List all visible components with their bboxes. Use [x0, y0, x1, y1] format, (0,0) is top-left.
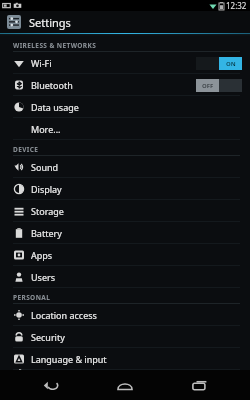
- staticText: Location access: [31, 309, 97, 321]
- staticText: Security: [31, 331, 65, 343]
- button[interactable]: Home: [102, 370, 148, 400]
- button[interactable]: Data usage: [0, 96, 250, 118]
- staticText: Settings: [29, 15, 71, 30]
- button[interactable]: Language & input: [0, 348, 250, 370]
- staticText: OFF: [202, 82, 214, 90]
- button[interactable]: Sound: [0, 156, 250, 178]
- button[interactable]: Back: [28, 370, 74, 400]
- staticText: Apps: [31, 249, 53, 261]
- button[interactable]: Location access: [0, 304, 250, 326]
- staticText: Data usage: [31, 101, 79, 113]
- staticText: Wi-Fi: [31, 57, 52, 69]
- button[interactable]: Users: [0, 266, 250, 288]
- staticText: DEVICE: [13, 145, 39, 154]
- staticText: Language & input: [31, 353, 107, 365]
- button[interactable]: More...: [0, 118, 250, 140]
- button[interactable]: Security: [0, 326, 250, 348]
- button[interactable]: Storage: [0, 200, 250, 222]
- button[interactable]: Apps: [0, 244, 250, 266]
- button[interactable]: Settings: [0, 11, 250, 33]
- button[interactable]: Recent apps: [176, 370, 222, 400]
- staticText: 12:32: [226, 0, 247, 11]
- button[interactable]: OFF: [196, 79, 242, 92]
- button[interactable]: Display: [0, 178, 250, 200]
- staticText: Storage: [31, 205, 64, 217]
- button[interactable]: Bluetooth: [0, 74, 250, 96]
- staticText: PERSONAL: [13, 293, 51, 302]
- staticText: Users: [31, 271, 55, 283]
- button[interactable]: Battery: [0, 222, 250, 244]
- staticText: Bluetooth: [31, 79, 73, 91]
- staticText: Battery: [31, 227, 62, 239]
- staticText: WIRELESS & NETWORKS: [13, 41, 97, 50]
- button[interactable]: ON: [196, 57, 242, 70]
- button[interactable]: Wi-Fi: [0, 52, 250, 74]
- staticText: ON: [226, 60, 236, 68]
- staticText: Display: [31, 183, 62, 195]
- staticText: Sound: [31, 161, 59, 173]
- staticText: More...: [31, 123, 61, 135]
